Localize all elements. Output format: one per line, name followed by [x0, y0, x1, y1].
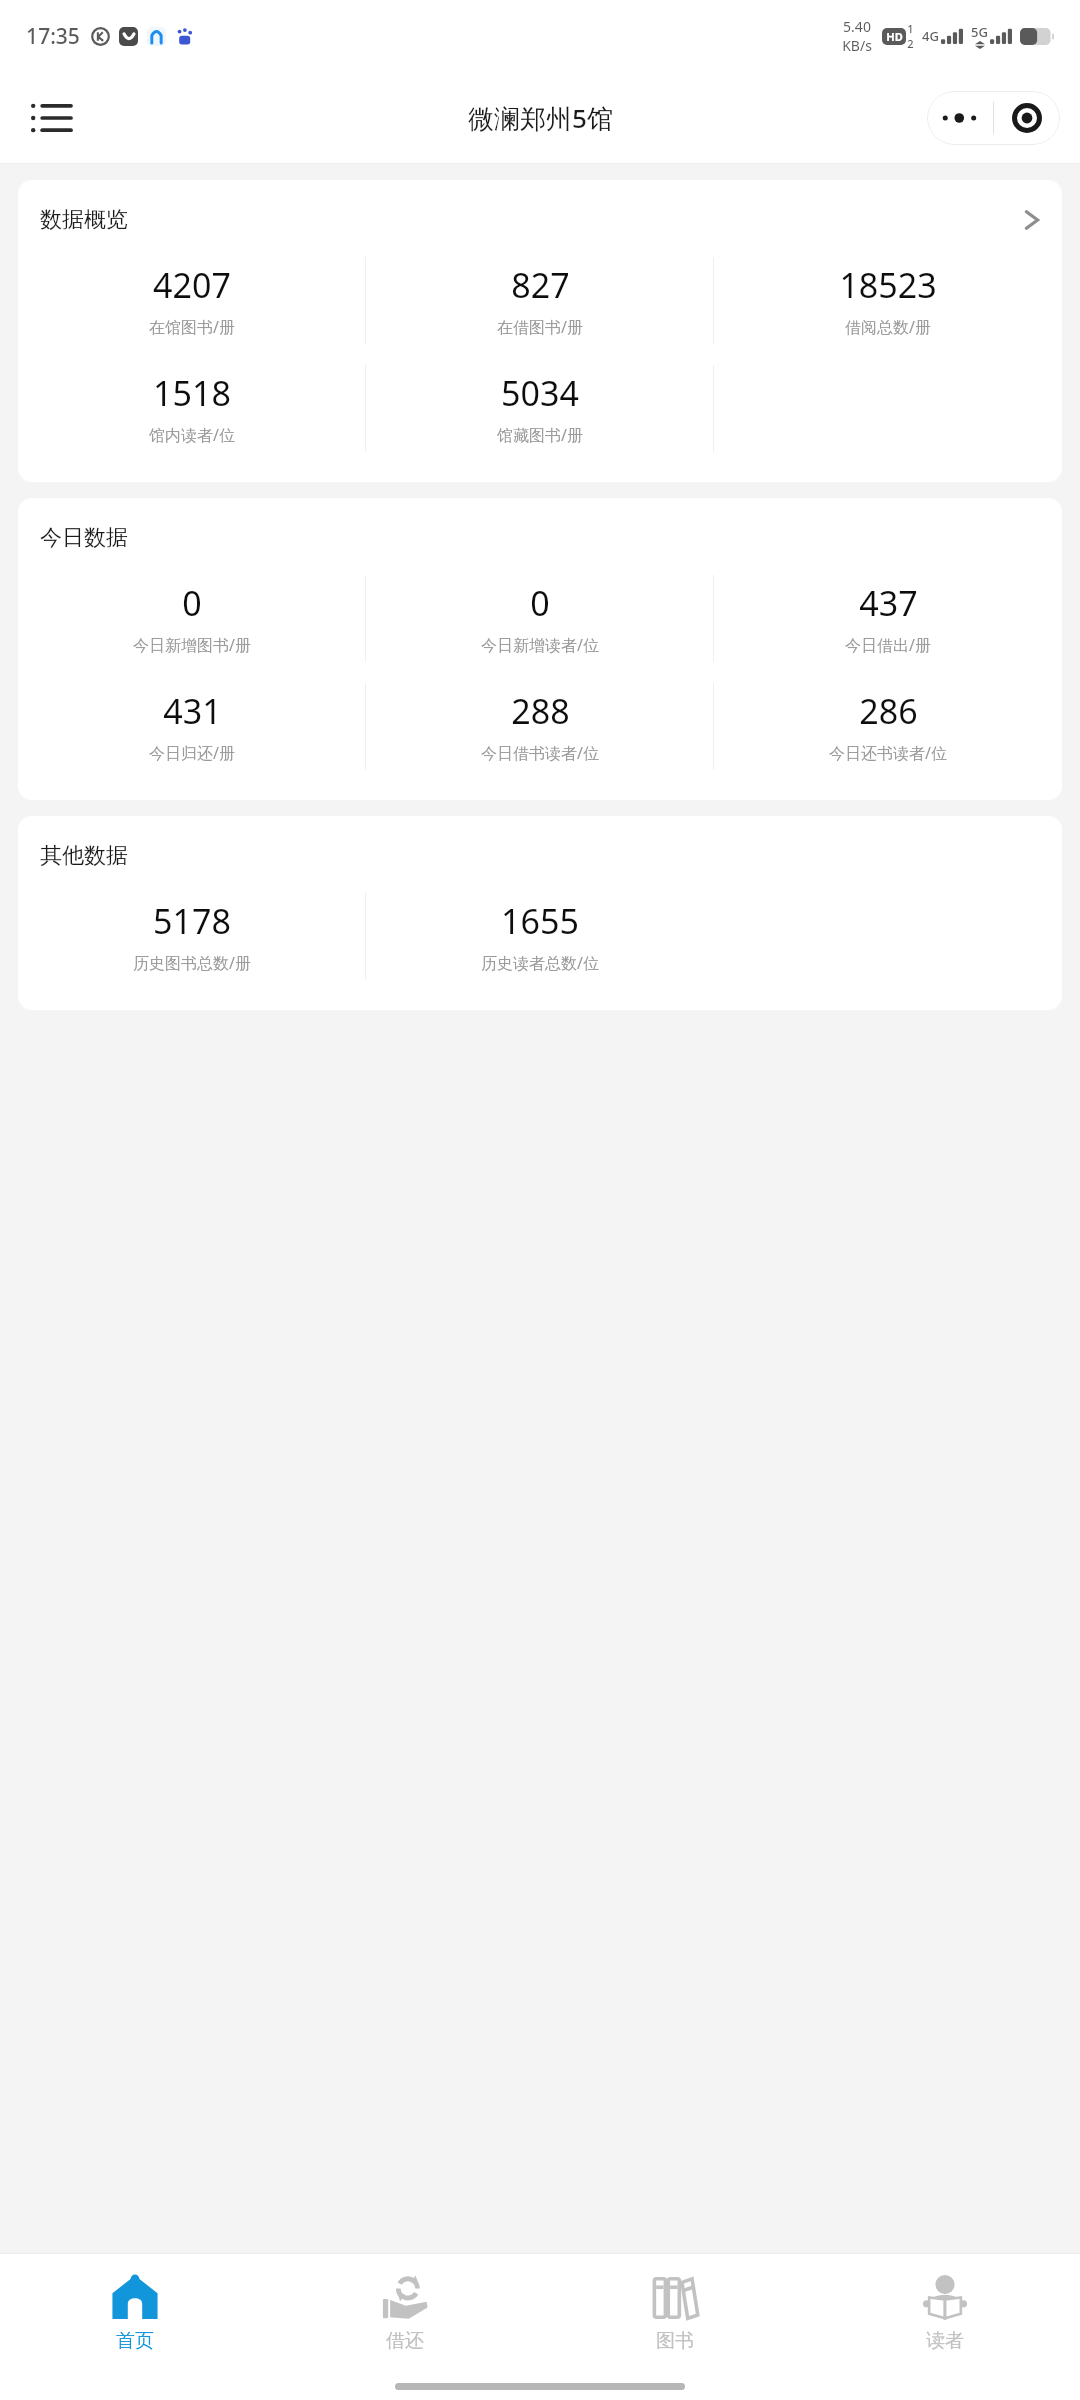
button[interactable]: Menu — [22, 89, 80, 147]
staticText: 在馆图书/册 — [149, 316, 235, 338]
staticText: 2 — [907, 36, 914, 51]
button[interactable]: 借还 — [270, 2254, 540, 2372]
staticText: 微澜郑州5馆 — [468, 100, 613, 136]
staticText: 5.40 — [843, 17, 871, 36]
staticText: 馆藏图书/册 — [497, 424, 583, 446]
staticText: 今日借书读者/位 — [481, 742, 599, 764]
button[interactable]: 数据概览 — [18, 180, 1062, 482]
staticText: 今日新增图书/册 — [133, 634, 251, 656]
staticText: 首页 — [116, 2329, 154, 2353]
staticText: 1 — [907, 21, 914, 36]
staticText: 今日新增读者/位 — [481, 634, 599, 656]
staticText: 0 — [182, 580, 202, 626]
staticText: 图书 — [656, 2329, 694, 2353]
staticText: 借阅总数/册 — [845, 316, 931, 338]
button[interactable]: 图书 — [540, 2254, 810, 2372]
staticText: 今日还书读者/位 — [829, 742, 947, 764]
staticText: 1655 — [501, 898, 579, 944]
staticText: 437 — [859, 580, 918, 626]
staticText: KB/s — [842, 36, 872, 55]
staticText: 在借图书/册 — [497, 316, 583, 338]
staticText: 4207 — [153, 262, 231, 308]
staticText: 读者 — [926, 2329, 964, 2353]
staticText: HD — [886, 29, 903, 44]
button[interactable]: 今日数据 — [18, 498, 1062, 800]
staticText: 数据概览 — [40, 206, 128, 234]
staticText: 827 — [511, 262, 570, 308]
staticText: 5034 — [501, 370, 579, 416]
staticText: 今日借出/册 — [845, 634, 931, 656]
staticText: 286 — [859, 688, 918, 734]
staticText: 17:35 — [26, 22, 80, 51]
staticText: 0 — [530, 580, 550, 626]
button[interactable]: 读者 — [810, 2254, 1080, 2372]
staticText: 1518 — [153, 370, 231, 416]
staticText: 其他数据 — [40, 842, 128, 870]
button[interactable]: 首页 — [0, 2254, 270, 2372]
staticText: 历史读者总数/位 — [481, 952, 599, 974]
staticText: 431 — [163, 688, 222, 734]
staticText: 4G — [922, 27, 939, 45]
button[interactable]: Close — [994, 91, 1060, 145]
button[interactable]: More — [927, 91, 993, 145]
staticText: 历史图书总数/册 — [133, 952, 251, 974]
staticText: 5G — [971, 23, 988, 41]
button[interactable]: 其他数据 — [18, 816, 1062, 1010]
staticText: 18523 — [839, 262, 937, 308]
staticText: 馆内读者/位 — [149, 424, 235, 446]
staticText: 借还 — [386, 2329, 424, 2353]
staticText: 今日归还/册 — [149, 742, 235, 764]
staticText: 今日数据 — [40, 524, 128, 552]
staticText: 5178 — [153, 898, 231, 944]
staticText: 288 — [511, 688, 570, 734]
